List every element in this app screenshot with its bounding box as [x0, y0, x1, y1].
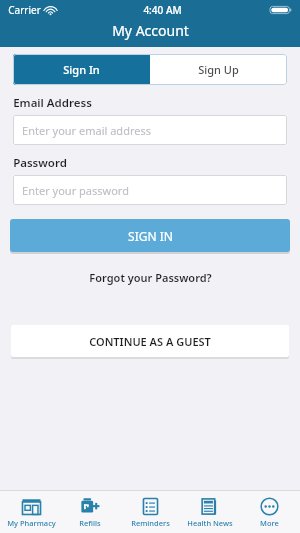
button[interactable]: Forgot your Password?: [81, 268, 220, 287]
button[interactable]: Enter your email address: [13, 115, 287, 145]
staticText: Sign In: [63, 62, 100, 77]
button[interactable]: Sign Up: [150, 54, 287, 85]
staticText: Enter your email address: [22, 123, 151, 138]
staticText: My Pharmacy: [7, 518, 56, 528]
button[interactable]: Reminders: [121, 491, 179, 533]
staticText: More: [260, 518, 279, 528]
staticText: Forgot your Password?: [89, 270, 212, 285]
staticText: Password: [13, 155, 67, 171]
staticText: SIGN IN: [128, 228, 173, 244]
staticText: Sign Up: [198, 62, 239, 77]
staticText: Refills: [79, 518, 101, 528]
staticText: CONTINUE AS A GUEST: [89, 334, 211, 349]
button[interactable]: Refills: [61, 491, 119, 533]
staticText: Carrier: [8, 3, 41, 17]
button[interactable]: Enter your password: [13, 175, 287, 205]
button[interactable]: Health News: [181, 491, 239, 533]
button[interactable]: Sign In: [13, 54, 150, 85]
staticText: Email Address: [13, 95, 92, 111]
button[interactable]: My Pharmacy: [2, 491, 60, 533]
button[interactable]: More: [240, 491, 298, 533]
staticText: 4:40 AM: [143, 3, 182, 17]
button[interactable]: CONTINUE AS A GUEST: [11, 325, 289, 357]
staticText: Health News: [187, 518, 233, 528]
staticText: My Account: [112, 21, 189, 40]
button[interactable]: SIGN IN: [10, 219, 290, 252]
staticText: Reminders: [131, 518, 170, 528]
staticText: Enter your password: [22, 183, 129, 198]
